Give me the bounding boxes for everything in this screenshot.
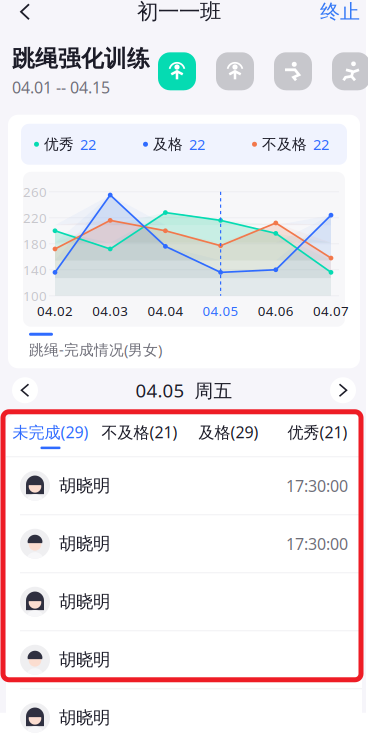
button[interactable]: 胡晓明	[6, 457, 362, 515]
button[interactable]: 终止	[316, 0, 360, 35]
staticText: 跳绳-完成情况(男女)	[29, 340, 162, 359]
staticText: 优秀(21)	[287, 421, 347, 443]
staticText: 及格	[153, 135, 183, 153]
button[interactable]: 优秀(21)	[273, 414, 362, 456]
button[interactable]: 深蹲	[274, 52, 312, 90]
staticText: 终止	[320, 0, 360, 24]
button[interactable]: 下一天	[330, 377, 356, 403]
staticText: 04.07	[313, 302, 349, 320]
staticText: 180	[23, 235, 47, 253]
button[interactable]: 胡晓明	[6, 689, 362, 734]
staticText: 04.03	[92, 302, 128, 320]
staticText: 140	[23, 261, 47, 279]
staticText: 04.04	[147, 302, 183, 320]
staticText: 22	[189, 134, 205, 154]
staticText: 100	[23, 287, 47, 305]
staticText: 不及格(21)	[101, 421, 177, 443]
staticText: 胡晓明	[59, 591, 110, 612]
staticText: 及格(29)	[198, 421, 258, 443]
button[interactable]: 上一天	[12, 377, 38, 403]
staticText: 不及格	[262, 135, 307, 153]
staticText: 胡晓明	[59, 475, 110, 496]
staticText: 22	[80, 134, 96, 154]
button[interactable]: 及格(29)	[184, 414, 273, 456]
button[interactable]: 跳绳	[158, 52, 196, 90]
button[interactable]: 跳绳2	[216, 52, 254, 90]
staticText: 胡晓明	[59, 707, 110, 728]
staticText: 04.05	[203, 302, 239, 320]
staticText: 17:30:00	[286, 475, 348, 496]
button[interactable]: 返回	[8, 0, 42, 35]
staticText: 初一一班	[137, 0, 221, 25]
staticText: 17:30:00	[286, 533, 348, 554]
staticText: 260	[23, 183, 47, 201]
staticText: 22	[313, 134, 329, 154]
staticText: 优秀	[44, 135, 74, 153]
staticText: 04.02	[37, 302, 73, 320]
button[interactable]: 胡晓明	[6, 515, 362, 573]
staticText: 未完成(29)	[12, 421, 88, 443]
staticText: 跳绳强化训练	[12, 45, 150, 73]
staticText: 220	[23, 209, 47, 227]
staticText: 04.01 -- 04.15	[12, 77, 110, 98]
button[interactable]: 跑步	[332, 52, 368, 90]
button[interactable]: 胡晓明	[6, 631, 362, 689]
button[interactable]: 不及格(21)	[95, 414, 184, 456]
staticText: 04.06	[258, 302, 294, 320]
staticText: 胡晓明	[59, 649, 110, 670]
staticText: 04.05 周五	[135, 378, 232, 403]
button[interactable]: 胡晓明	[6, 573, 362, 631]
button[interactable]: 未完成(29)	[6, 414, 95, 456]
staticText: 胡晓明	[59, 533, 110, 554]
